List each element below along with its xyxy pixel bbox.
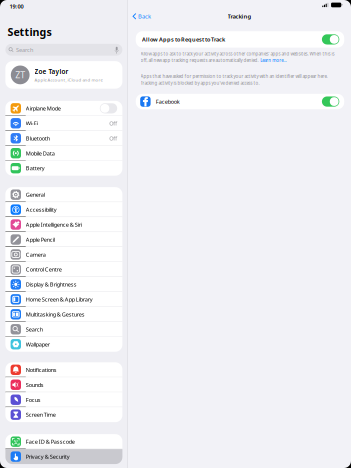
staticText: Allow apps to ask to track your activity…	[141, 51, 335, 57]
staticText: Settings	[7, 24, 51, 39]
staticText: Learn more…	[260, 57, 286, 63]
button[interactable]: Airplane Mode	[5, 101, 122, 116]
staticText: Display & Brightness	[26, 281, 77, 288]
button[interactable]: ZT	[5, 61, 122, 89]
staticText: off, all new app tracking requests are a…	[141, 57, 259, 63]
button[interactable]: Camera	[5, 247, 122, 262]
button[interactable]: Multitasking & Gestures	[5, 307, 122, 322]
button[interactable]: Face ID & Passcode	[5, 434, 122, 449]
staticText: Screen Time	[26, 411, 56, 418]
button[interactable]: Wi-Fi	[5, 116, 122, 131]
button[interactable]: Control Centre	[5, 262, 122, 277]
button[interactable]: Screen Time	[5, 407, 122, 422]
button[interactable]: Accessibility	[5, 202, 122, 217]
button[interactable]: Focus	[5, 392, 122, 407]
staticText: Notifications	[26, 366, 57, 374]
button[interactable]: Battery	[5, 161, 122, 176]
staticText: Allow Apps to Request to Track	[142, 36, 225, 43]
staticText: Facebook	[156, 98, 180, 105]
button[interactable]: Search	[5, 322, 122, 337]
staticText: Sounds	[26, 381, 44, 388]
button[interactable]: Home Screen & App Library	[5, 292, 122, 307]
staticText: Camera	[26, 251, 46, 258]
staticText: Wallpaper	[26, 340, 50, 348]
staticText: Multitasking & Gestures	[26, 310, 85, 318]
staticText: Apple Account, iCloud and more	[35, 77, 103, 83]
button[interactable]: Mobile Data	[5, 146, 122, 161]
staticText: Battery	[26, 164, 45, 172]
staticText: Wi-Fi	[26, 119, 38, 127]
button[interactable]: Facebook	[136, 94, 344, 109]
button[interactable]: Apple Intelligence & Siri	[5, 217, 122, 232]
staticText: Control Centre	[26, 266, 62, 273]
staticText: Accessibility	[26, 206, 57, 213]
staticText: Bluetooth	[26, 134, 50, 142]
staticText: Face ID & Passcode	[26, 438, 75, 445]
staticText: Search	[16, 46, 33, 53]
button[interactable]: Wallpaper	[5, 337, 122, 352]
staticText: Apple Pencil	[26, 236, 55, 243]
staticText: Apps that have asked for permission to t…	[141, 73, 328, 79]
staticText: Airplane Mode	[26, 104, 61, 112]
staticText: Tracking	[227, 12, 251, 20]
staticText: ZT	[15, 69, 25, 81]
staticText: Mobile Data	[26, 149, 55, 157]
button[interactable]: Back	[128, 10, 156, 22]
button[interactable]: General	[5, 187, 122, 202]
staticText: Off	[109, 119, 117, 127]
staticText: Home Screen & App Library	[26, 295, 93, 303]
staticText: Focus	[26, 396, 41, 403]
button[interactable]: Privacy & Security	[5, 449, 122, 464]
staticText: Zoe Taylor	[35, 67, 69, 76]
button[interactable]: Sounds	[5, 377, 122, 392]
staticText: Privacy & Security	[26, 453, 70, 460]
staticText: Apple Intelligence & Siri	[26, 221, 82, 228]
staticText: Back	[138, 12, 151, 20]
staticText: Tracking activity is blocked by apps you…	[141, 80, 260, 86]
staticText: 19:00	[10, 3, 24, 10]
staticText: Off	[109, 134, 117, 142]
button[interactable]: Notifications	[5, 362, 122, 377]
button[interactable]: Apple Pencil	[5, 232, 122, 247]
button[interactable]: Bluetooth	[5, 131, 122, 146]
button[interactable]: Allow Apps to Request to Track	[136, 31, 344, 48]
staticText: General	[26, 191, 45, 198]
staticText: Search	[26, 325, 43, 333]
button[interactable]: Display & Brightness	[5, 277, 122, 292]
